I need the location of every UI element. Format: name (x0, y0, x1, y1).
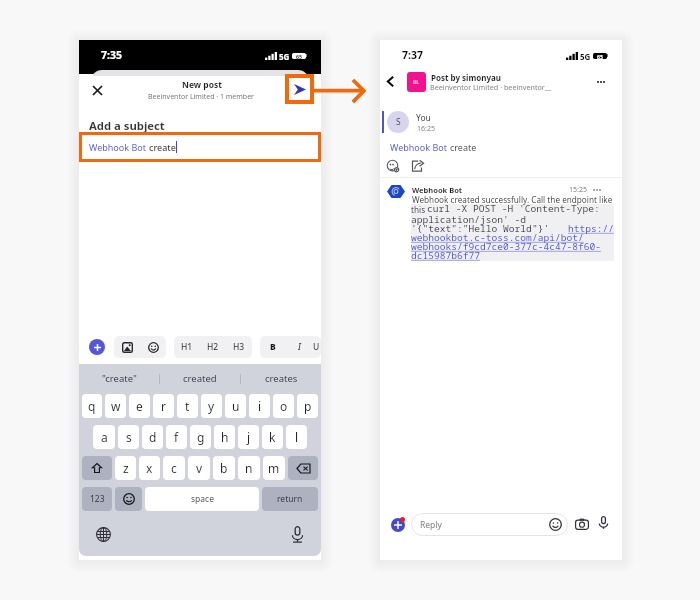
button[interactable]: Backspace (288, 456, 318, 480)
button[interactable]: Insert image (114, 336, 140, 358)
button[interactable]: o (273, 394, 294, 418)
button[interactable]: z (115, 456, 136, 480)
button[interactable]: Shift (82, 456, 112, 480)
staticText: B (270, 341, 276, 353)
staticText: 7:35 (101, 48, 122, 62)
button[interactable]: h (214, 425, 235, 449)
button[interactable]: Add attachment (89, 339, 105, 355)
button[interactable]: a (93, 425, 115, 449)
button[interactable]: "create" (79, 366, 159, 391)
button[interactable]: H3 (226, 336, 252, 358)
staticText: 5G (580, 51, 591, 62)
button[interactable]: U (312, 336, 321, 358)
button[interactable]: Forward (410, 158, 426, 174)
staticText: p (304, 398, 312, 414)
staticText: create (450, 141, 477, 153)
button[interactable]: i (249, 394, 270, 418)
staticText: webhookbot.c-toss.com/api/bot/ (411, 231, 584, 244)
staticText: q (88, 398, 96, 414)
staticText: application/json' -d (411, 213, 527, 226)
staticText: 65 (296, 53, 302, 59)
button[interactable]: space (145, 487, 259, 511)
button[interactable]: I (286, 336, 312, 358)
button[interactable]: t (177, 394, 198, 418)
staticText: a (101, 429, 108, 445)
staticText: s (126, 429, 132, 445)
staticText: Webhook Bot (89, 141, 149, 153)
staticText: create (149, 141, 176, 153)
button[interactable]: 123 (82, 487, 112, 511)
button[interactable]: Close (86, 79, 108, 101)
button[interactable]: f (166, 425, 187, 449)
staticText: H3 (233, 341, 245, 353)
staticText: U (313, 341, 320, 353)
staticText: S (396, 116, 401, 128)
staticText: curl -X POST -H 'Content-Type: (427, 202, 600, 215)
button[interactable]: Reply (411, 513, 568, 536)
staticText: '{"text":"Hello World"}' (411, 222, 550, 235)
button[interactable]: Switch language (93, 524, 113, 544)
staticText: k (269, 429, 276, 445)
button[interactable]: Voice message (594, 514, 612, 532)
staticText: z (123, 460, 129, 476)
button[interactable]: r (153, 394, 174, 418)
button[interactable]: q (82, 394, 102, 418)
staticText: e (136, 398, 143, 414)
staticText: l (295, 429, 299, 445)
staticText: u (232, 398, 240, 414)
staticText: 5G (279, 51, 290, 62)
button[interactable]: w (105, 394, 126, 418)
button[interactable]: Insert emoji (140, 336, 166, 358)
button[interactable]: More options (590, 71, 611, 92)
staticText: Webhook created successfully. Call the e… (412, 194, 613, 205)
staticText: i (258, 398, 262, 414)
button[interactable]: l (286, 425, 307, 449)
staticText: H1 (181, 341, 193, 353)
staticText: 15:25 (569, 185, 587, 195)
staticText: Beeinventor Limited · beeinventor__ (430, 82, 552, 92)
staticText: x (146, 460, 153, 476)
button[interactable]: s (118, 425, 139, 449)
staticText: y (208, 398, 215, 414)
staticText: Add a subject (89, 118, 165, 133)
button[interactable]: Dictate (287, 524, 307, 544)
staticText: New post (182, 79, 222, 91)
button[interactable]: u (225, 394, 246, 418)
button[interactable]: x (139, 456, 160, 480)
staticText: r (161, 398, 166, 414)
button[interactable]: Add reaction (385, 158, 401, 174)
button[interactable]: c (163, 456, 185, 480)
button[interactable]: b (213, 456, 235, 480)
button[interactable]: Back (381, 72, 400, 91)
button[interactable]: creates (241, 366, 321, 391)
button[interactable]: Add attachment (391, 518, 405, 532)
button[interactable]: created (160, 366, 240, 391)
button[interactable]: return (262, 487, 318, 511)
button[interactable]: j (238, 425, 259, 449)
staticText: Beeinventor Limited · 1 member (148, 92, 255, 102)
button[interactable]: H2 (200, 336, 226, 358)
button[interactable]: p (297, 394, 318, 418)
button[interactable]: k (262, 425, 283, 449)
button[interactable]: B (260, 336, 286, 358)
staticText: 16:25 (417, 124, 435, 134)
button[interactable]: Camera (573, 515, 591, 533)
staticText: w (111, 398, 121, 414)
button[interactable]: g (190, 425, 211, 449)
staticText: this (411, 204, 426, 215)
staticText: h (221, 429, 229, 445)
button[interactable]: m (263, 456, 285, 480)
button[interactable]: Send (285, 74, 314, 104)
staticText: t (185, 398, 190, 414)
staticText: b (220, 460, 228, 476)
button[interactable]: e (129, 394, 150, 418)
staticText: m (268, 460, 280, 476)
button[interactable]: d (142, 425, 163, 449)
button[interactable]: n (238, 456, 260, 480)
button[interactable]: H1 (174, 336, 200, 358)
staticText: You (416, 112, 431, 124)
button[interactable]: Emoji keyboard (115, 487, 142, 511)
staticText: c (171, 460, 177, 476)
button[interactable]: v (188, 456, 210, 480)
button[interactable]: y (201, 394, 222, 418)
